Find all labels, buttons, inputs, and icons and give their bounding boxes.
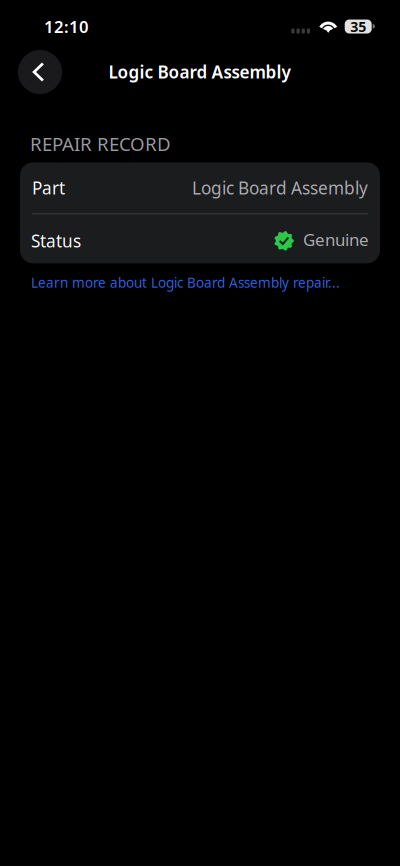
staticText: 12:10: [44, 15, 89, 38]
staticText: Learn more about Logic Board Assembly re…: [31, 273, 340, 292]
staticText: REPAIR RECORD: [30, 131, 171, 156]
button[interactable]: Back: [18, 50, 62, 94]
staticText: Part: [32, 176, 65, 200]
staticText: Logic Board Assembly: [192, 176, 368, 200]
staticText: 35: [350, 17, 366, 36]
staticText: Status: [31, 229, 81, 252]
staticText: Genuine: [303, 228, 369, 251]
staticText: Logic Board Assembly: [108, 60, 291, 84]
button[interactable]: Learn more about Logic Board Assembly re…: [31, 273, 340, 292]
